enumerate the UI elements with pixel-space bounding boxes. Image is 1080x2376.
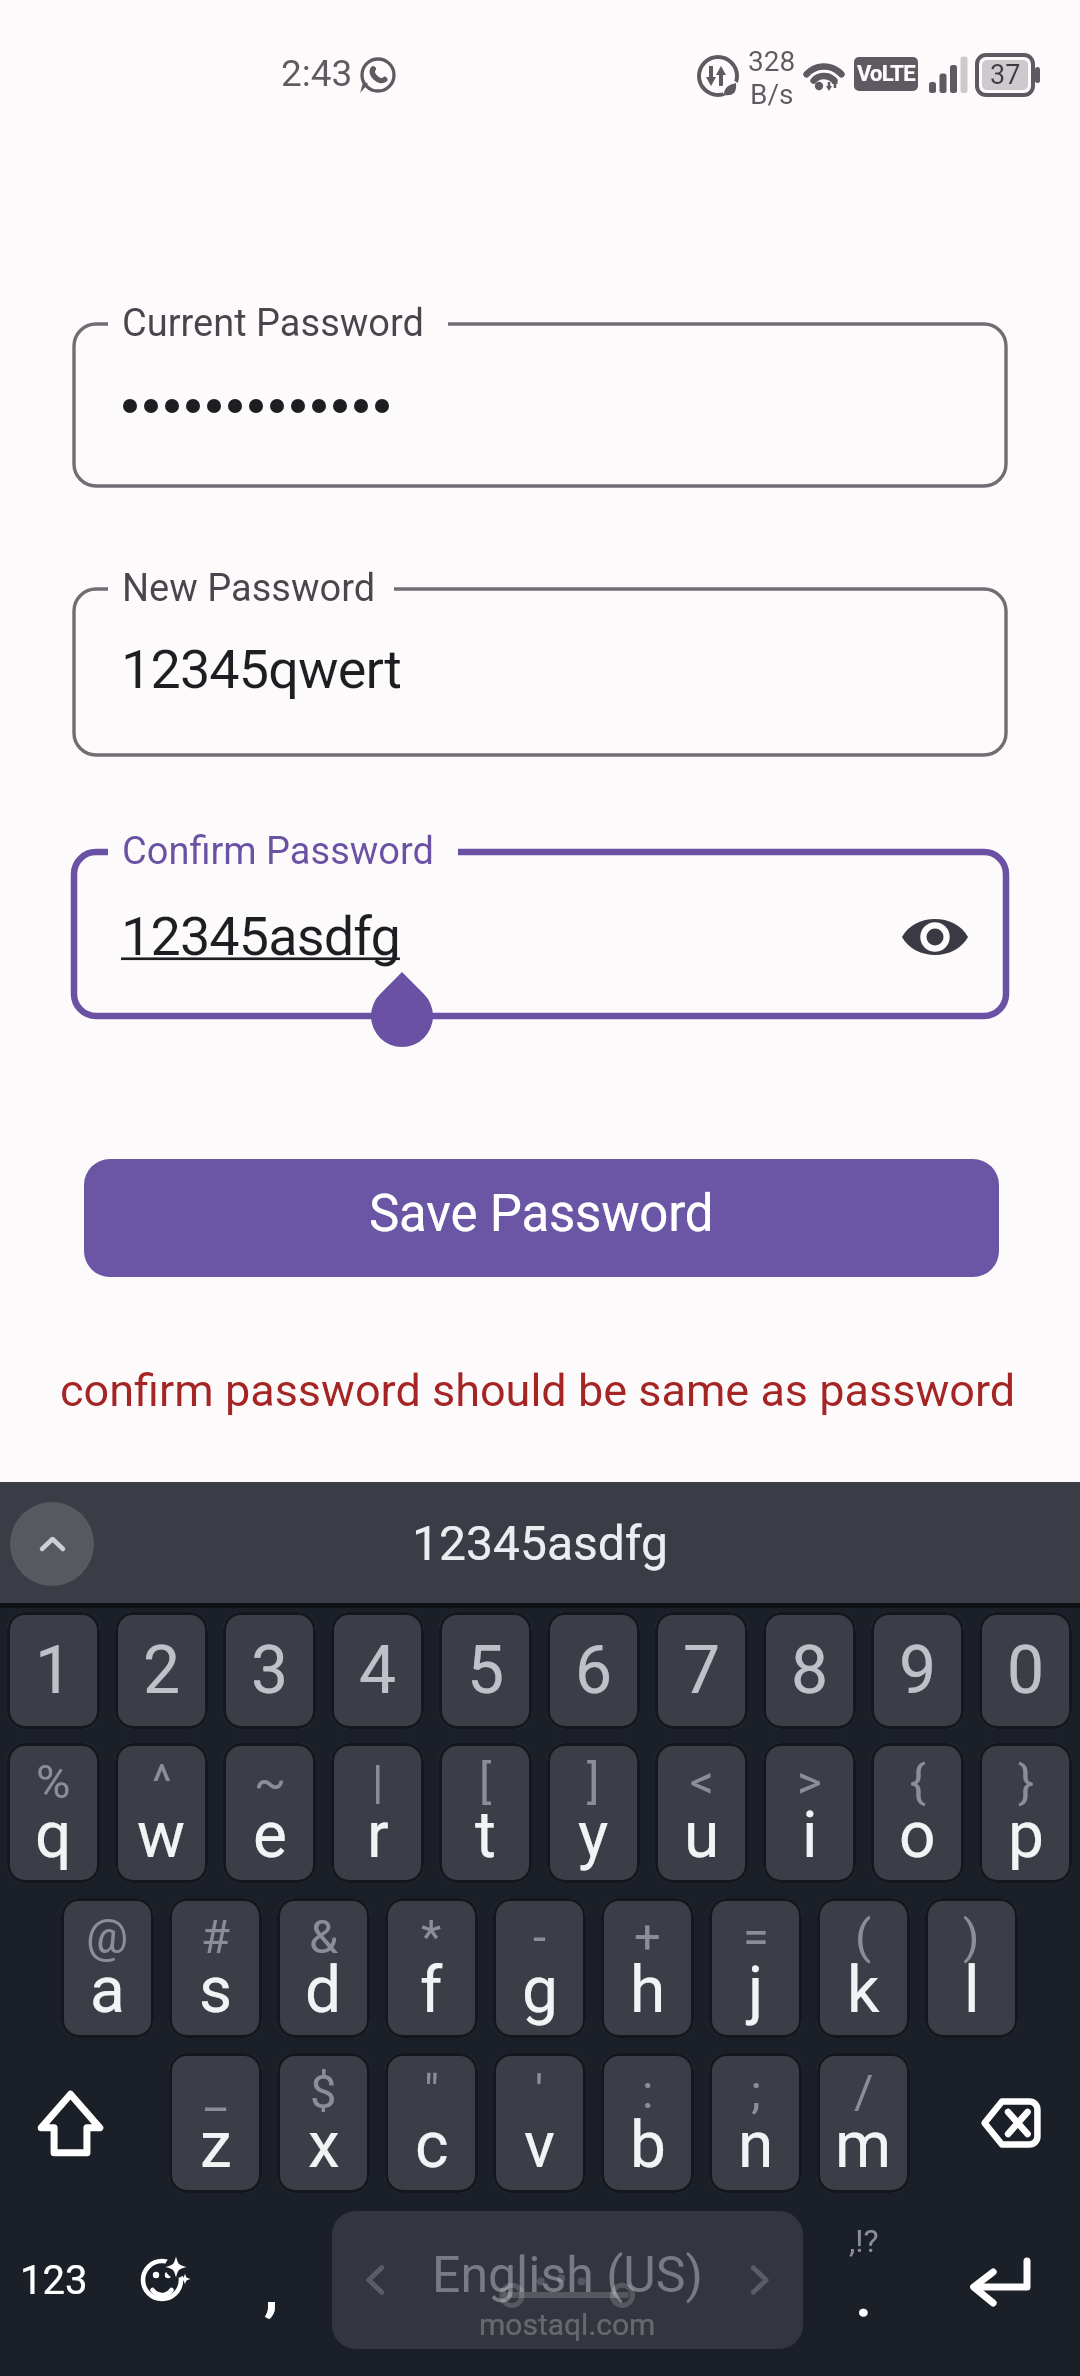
staticText: 1: [35, 1632, 73, 1709]
staticText: v: [524, 2108, 555, 2183]
staticText: |: [372, 1754, 384, 1809]
staticText: >: [797, 1754, 822, 1809]
button[interactable]: {: [871, 1743, 964, 1883]
staticText: &: [309, 1909, 339, 1964]
staticText: z: [200, 2108, 232, 2183]
staticText: 328: [748, 45, 796, 78]
button[interactable]: Shift: [14, 2063, 126, 2183]
button[interactable]: Save Password: [84, 1159, 999, 1277]
staticText: f: [420, 1953, 443, 2028]
staticText: q: [35, 1798, 72, 1873]
button[interactable]: :: [601, 2053, 694, 2193]
staticText: 123: [20, 2257, 88, 2304]
staticText: +: [634, 1909, 661, 1964]
button[interactable]: Backspace: [955, 2063, 1065, 2183]
staticText: <: [690, 1754, 714, 1809]
button[interactable]: ): [925, 1898, 1018, 2038]
button[interactable]: |: [331, 1743, 424, 1883]
button[interactable]: 123: [0, 2218, 110, 2338]
button[interactable]: =: [709, 1898, 802, 2038]
staticText: %: [36, 1754, 71, 1809]
button[interactable]: Confirm Password: [74, 852, 1006, 1016]
staticText: @: [86, 1909, 129, 1964]
staticText: c: [415, 2108, 449, 2183]
staticText: Save Password: [369, 1184, 714, 1244]
staticText: ,: [264, 2255, 279, 2323]
staticText: l: [964, 1953, 980, 2028]
button[interactable]: ": [385, 2053, 478, 2193]
staticText: /: [854, 2064, 874, 2119]
button[interactable]: @: [61, 1898, 154, 2038]
button[interactable]: ,!?: [810, 2208, 918, 2348]
button[interactable]: $: [277, 2053, 370, 2193]
button[interactable]: #: [169, 1898, 262, 2038]
button[interactable]: ]: [547, 1743, 640, 1883]
staticText: 7: [683, 1632, 721, 1709]
staticText: -: [533, 1909, 546, 1964]
staticText: w: [137, 1798, 186, 1873]
staticText: VoLTE: [857, 61, 915, 87]
button[interactable]: 6: [547, 1612, 640, 1729]
button[interactable]: _: [169, 2053, 262, 2193]
button[interactable]: ;: [709, 2053, 802, 2193]
button[interactable]: <: [655, 1743, 748, 1883]
button[interactable]: New Password: [74, 589, 1006, 755]
staticText: Current Password: [122, 301, 424, 346]
button[interactable]: [: [439, 1743, 532, 1883]
button[interactable]: ~: [223, 1743, 316, 1883]
button[interactable]: Current Password: [74, 324, 1006, 486]
button[interactable]: Expand toolbar: [10, 1502, 94, 1586]
staticText: b: [630, 2108, 666, 2183]
button[interactable]: }: [979, 1743, 1072, 1883]
staticText: 37: [990, 59, 1021, 91]
staticText: p: [1008, 1798, 1044, 1873]
staticText: n: [738, 2108, 774, 2183]
staticText: :: [642, 2064, 654, 2119]
button[interactable]: Enter: [940, 2232, 1060, 2332]
staticText: 9: [899, 1632, 937, 1709]
staticText: B/s: [750, 78, 794, 111]
button[interactable]: Emoji: [110, 2218, 216, 2338]
button[interactable]: English (US): [332, 2211, 803, 2349]
button[interactable]: 1: [7, 1612, 100, 1729]
staticText: ;: [751, 2064, 761, 2119]
staticText: 6: [575, 1632, 613, 1709]
staticText: 2:43: [281, 52, 353, 95]
button[interactable]: /: [817, 2053, 910, 2193]
button[interactable]: 8: [763, 1612, 856, 1729]
button[interactable]: %: [7, 1743, 100, 1883]
button[interactable]: &: [277, 1898, 370, 2038]
staticText: e: [253, 1798, 287, 1873]
staticText: k: [847, 1953, 880, 2028]
button[interactable]: ': [493, 2053, 586, 2193]
button[interactable]: 9: [871, 1612, 964, 1729]
staticText: o: [899, 1798, 936, 1873]
button[interactable]: >: [763, 1743, 856, 1883]
button[interactable]: 3: [223, 1612, 316, 1729]
staticText: mostaql.com: [479, 2307, 656, 2342]
button[interactable]: 0: [979, 1612, 1072, 1729]
button[interactable]: 7: [655, 1612, 748, 1729]
button[interactable]: 5: [439, 1612, 532, 1729]
button[interactable]: 2: [115, 1612, 208, 1729]
button[interactable]: ^: [115, 1743, 208, 1883]
button[interactable]: Toggle password visibility: [885, 887, 985, 987]
staticText: m: [835, 2108, 892, 2183]
staticText: Confirm Password: [122, 829, 434, 874]
button[interactable]: -: [493, 1898, 586, 2038]
staticText: h: [630, 1953, 666, 2028]
staticText: English (US): [432, 2246, 703, 2305]
button[interactable]: ,: [222, 2218, 318, 2338]
staticText: confirm password should be same as passw…: [60, 1364, 1016, 1417]
staticText: (: [855, 1909, 872, 1964]
staticText: ): [963, 1909, 980, 1964]
staticText: New Password: [122, 566, 376, 611]
button[interactable]: *: [385, 1898, 478, 2038]
staticText: y: [578, 1798, 609, 1873]
button[interactable]: +: [601, 1898, 694, 2038]
staticText: a: [90, 1953, 125, 2028]
button[interactable]: (: [817, 1898, 910, 2038]
staticText: =: [743, 1909, 769, 1964]
button[interactable]: 4: [331, 1612, 424, 1729]
staticText: 8: [791, 1632, 829, 1709]
